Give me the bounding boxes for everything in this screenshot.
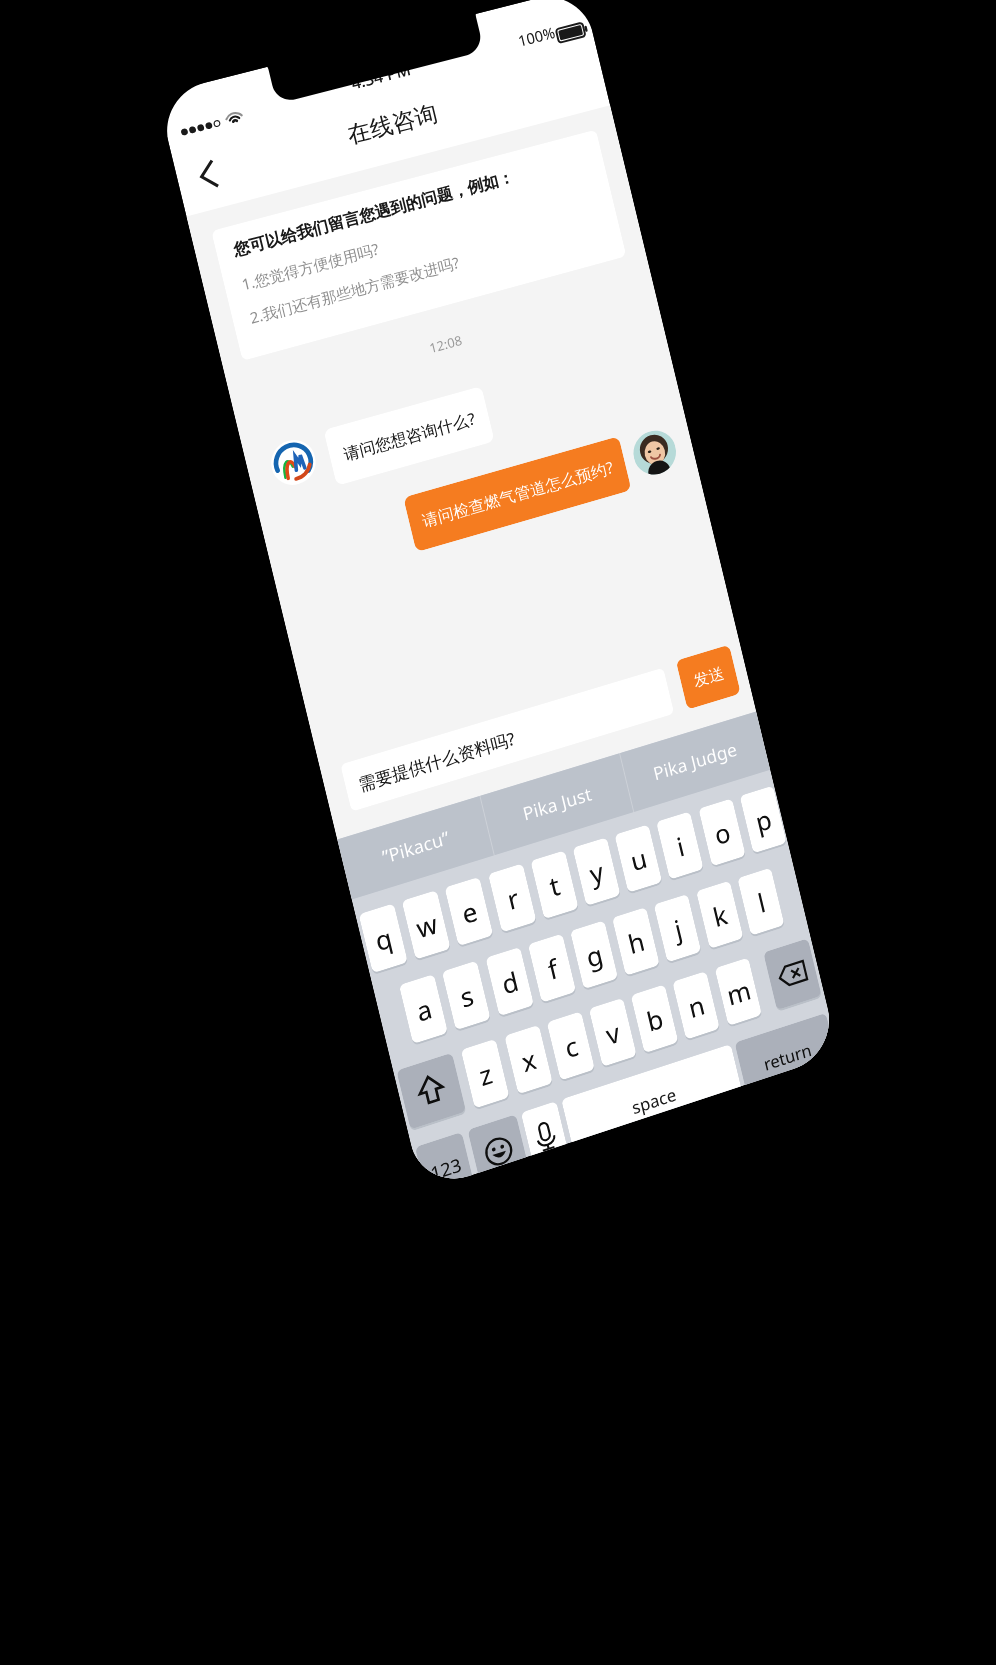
button[interactable]: l (379, 911, 415, 971)
button[interactable]: 请问您想咨询什么? (81, 362, 244, 419)
staticText: p (411, 845, 427, 880)
staticText: 您可以给我们留言您遇到的问题，例如： (37, 158, 325, 178)
button[interactable]: i (312, 832, 348, 892)
staticText: 12:08 (0, 303, 438, 321)
staticText: o (367, 845, 383, 880)
button[interactable]: p (401, 832, 437, 892)
button[interactable]: 需要提供什么资料吗? (20, 685, 356, 733)
staticText: l (394, 924, 401, 959)
staticText: 2.我们还有那些地方需要改进吗? (37, 226, 252, 246)
button[interactable]: Pika Judge (293, 755, 438, 816)
button[interactable]: back (387, 991, 435, 1051)
button[interactable]: return (337, 1069, 435, 1113)
staticText: 请问检查燃气管道怎么预约? (155, 465, 354, 487)
staticText: k (346, 924, 360, 959)
staticText: Pika Judge (321, 773, 410, 798)
button[interactable]: 请问检查燃气管道怎么预约? (142, 448, 367, 504)
staticText: return (361, 1088, 412, 1111)
button[interactable]: k (335, 911, 371, 971)
staticText: 请问您想咨询什么? (95, 380, 230, 402)
staticText: 在线咨询 (0, 72, 438, 101)
button[interactable]: 您可以给我们留言您遇到的问题，例如： (20, 143, 418, 275)
button[interactable]: o (357, 832, 393, 892)
